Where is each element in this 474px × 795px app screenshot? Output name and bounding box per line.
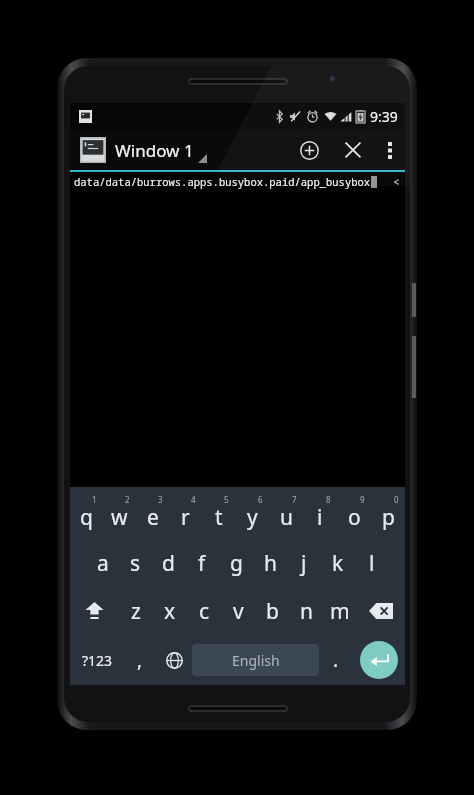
staticText: p	[382, 503, 395, 532]
staticText: a	[97, 549, 109, 578]
button[interactable]: g	[219, 539, 253, 587]
staticText: c	[199, 597, 210, 626]
staticText: Window 1	[115, 139, 194, 162]
staticText: q	[80, 503, 93, 532]
staticText: z	[131, 597, 141, 626]
button[interactable]: h	[253, 539, 287, 587]
button[interactable]: English	[192, 644, 319, 676]
staticText: x	[164, 597, 176, 626]
button[interactable]: j	[287, 539, 321, 587]
staticText: 9	[360, 494, 365, 505]
button[interactable]: data/data/burrows.apps.busybox.paid/app_…	[70, 172, 405, 590]
staticText: j	[301, 549, 307, 578]
staticText: 6	[258, 494, 263, 505]
button[interactable]: New window	[287, 130, 331, 170]
staticText: data/data/burrows.apps.busybox.paid/app_…	[74, 175, 371, 189]
staticText: g	[230, 549, 243, 578]
button[interactable]: 7	[269, 487, 303, 539]
button[interactable]: d	[152, 539, 185, 587]
staticText: u	[280, 503, 293, 532]
button[interactable]: l	[355, 539, 389, 587]
button[interactable]: s	[119, 539, 152, 587]
button[interactable]: x	[153, 587, 187, 635]
staticText: k	[332, 549, 344, 578]
button[interactable]: n	[289, 587, 323, 635]
staticText: b	[266, 597, 279, 626]
staticText: 5	[224, 494, 229, 505]
staticText: i	[317, 503, 323, 532]
staticText: o	[348, 503, 361, 532]
staticText: 7	[292, 494, 297, 505]
button[interactable]: Shift	[70, 587, 119, 635]
staticText: ,	[137, 647, 143, 673]
staticText: t	[215, 503, 223, 532]
button[interactable]: m	[323, 587, 357, 635]
button[interactable]: Change language	[156, 635, 192, 685]
button[interactable]: k	[321, 539, 355, 587]
staticText: 1	[92, 494, 97, 505]
staticText: d	[162, 549, 175, 578]
staticText: 9:39	[370, 107, 398, 126]
button[interactable]: 6	[235, 487, 269, 539]
staticText: n	[300, 597, 313, 626]
button[interactable]: Backspace	[357, 587, 405, 635]
button[interactable]: Enter	[353, 635, 405, 685]
button[interactable]: 0	[371, 487, 405, 539]
button[interactable]: z	[119, 587, 153, 635]
button[interactable]: 2	[103, 487, 136, 539]
staticText: .	[333, 647, 339, 673]
button[interactable]: 9	[337, 487, 371, 539]
staticText: English	[232, 651, 280, 670]
button[interactable]: 3	[136, 487, 169, 539]
staticText: e	[147, 503, 159, 532]
staticText: 8	[326, 494, 331, 505]
staticText: h	[264, 549, 277, 578]
button[interactable]: f	[185, 539, 219, 587]
button[interactable]: More options	[375, 130, 405, 170]
button[interactable]: c	[187, 587, 221, 635]
button[interactable]: .	[319, 635, 353, 685]
button[interactable]: 5	[202, 487, 235, 539]
staticText: y	[247, 503, 258, 532]
staticText: 3	[158, 494, 163, 505]
button[interactable]: 4	[169, 487, 202, 539]
staticText: w	[111, 503, 128, 532]
staticText: 2	[125, 494, 130, 505]
button[interactable]: b	[255, 587, 289, 635]
staticText: v	[233, 597, 244, 626]
button[interactable]: Close window	[331, 130, 375, 170]
staticText: r	[181, 503, 190, 532]
button[interactable]: ,	[124, 635, 156, 685]
button[interactable]: v	[221, 587, 255, 635]
button[interactable]: ?123	[70, 635, 124, 685]
staticText: <	[393, 174, 400, 189]
staticText: ?123	[82, 651, 113, 670]
staticText: 4	[191, 494, 196, 505]
button[interactable]: 8	[303, 487, 337, 539]
staticText: 0	[394, 494, 399, 505]
button[interactable]: 1	[70, 487, 103, 539]
staticText: m	[330, 597, 350, 626]
staticText: f	[198, 549, 206, 578]
button[interactable]: a	[86, 539, 119, 587]
staticText: s	[130, 549, 141, 578]
staticText: l	[369, 549, 375, 578]
button[interactable]: Window 1	[70, 130, 219, 170]
